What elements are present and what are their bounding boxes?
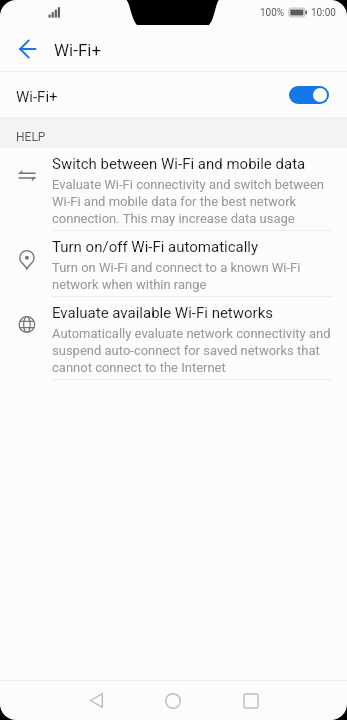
button[interactable]: Wi-Fi+ xyxy=(0,72,347,117)
staticText: Switch between Wi-Fi and mobile data xyxy=(52,155,306,173)
staticText: Turn on/off Wi-Fi automatically xyxy=(52,238,259,256)
button[interactable]: Evaluate available Wi-Fi networks xyxy=(0,297,347,380)
staticText: Evaluate Wi-Fi connectivity and switch b… xyxy=(52,177,332,226)
staticText: Wi-Fi+ xyxy=(54,40,102,60)
button[interactable]: Back xyxy=(58,681,134,720)
button[interactable]: Home xyxy=(135,681,211,720)
staticText: HELP xyxy=(16,130,46,144)
staticText: Wi-Fi+ xyxy=(16,88,58,106)
button[interactable]: Turn on/off Wi-Fi automatically xyxy=(0,231,347,297)
button[interactable]: Switch between Wi-Fi and mobile data xyxy=(0,148,347,231)
button[interactable]: Recent apps xyxy=(213,681,289,720)
staticText: Evaluate available Wi-Fi networks xyxy=(52,304,274,322)
staticText: Automatically evaluate network connectiv… xyxy=(52,326,332,375)
staticText: Turn on Wi-Fi and connect to a known Wi-… xyxy=(52,260,332,292)
staticText: 10:00 xyxy=(311,7,336,19)
button[interactable]: Back xyxy=(0,25,53,71)
staticText: 100% xyxy=(260,7,285,19)
